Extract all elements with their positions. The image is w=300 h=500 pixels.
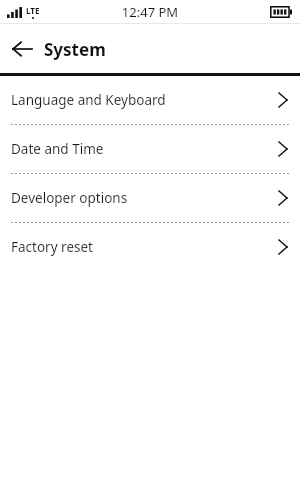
staticText: Date and Time <box>11 140 104 158</box>
staticText: Language and Keyboard <box>11 91 166 109</box>
staticText: LTE <box>26 5 40 16</box>
staticText: Developer options <box>11 189 128 207</box>
button[interactable]: Date and Time <box>0 125 300 173</box>
staticText: Factory reset <box>11 238 93 256</box>
button[interactable]: Back <box>0 27 44 71</box>
button[interactable]: Factory reset <box>0 223 300 271</box>
button[interactable]: Developer options <box>0 174 300 222</box>
staticText: System <box>44 38 106 61</box>
staticText: 12:47 PM <box>0 3 300 21</box>
button[interactable]: Language and Keyboard <box>0 76 300 124</box>
